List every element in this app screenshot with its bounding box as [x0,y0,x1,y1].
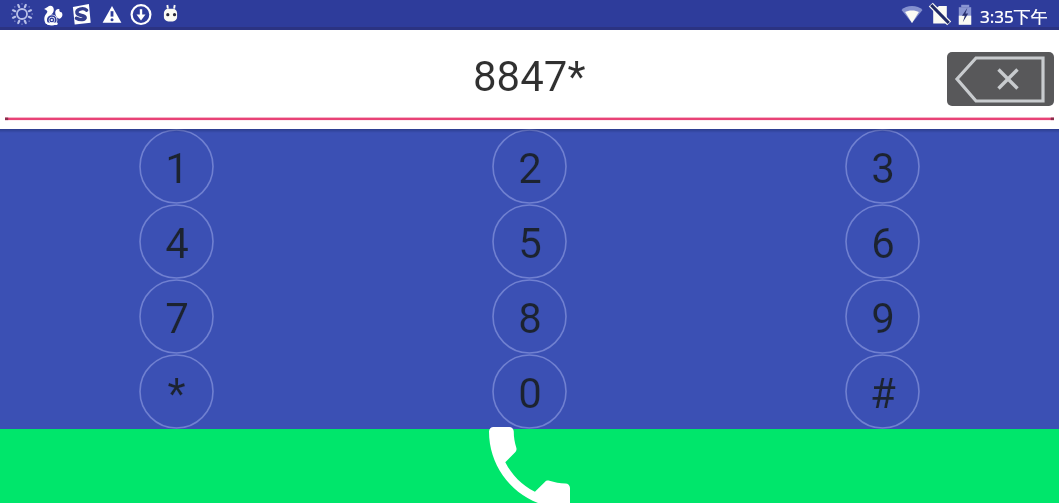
button[interactable]: * [0,354,353,429]
staticText: 4 [165,219,189,268]
button[interactable]: # [706,354,1059,429]
staticText: 3:35下午 [980,5,1048,28]
button[interactable]: 2 [353,129,706,204]
staticText: 6 [871,219,895,268]
staticText: 8847* [473,52,586,101]
staticText: 8 [518,294,542,343]
staticText: 9 [871,294,895,343]
staticText: * [167,369,186,418]
staticText: 7 [165,294,189,343]
staticText: 0 [518,369,542,418]
button[interactable]: 5 [353,204,706,279]
button[interactable]: 0 [353,354,706,429]
button[interactable]: 4 [0,204,353,279]
button[interactable]: Backspace [947,52,1054,106]
staticText: 3 [871,144,895,193]
staticText: 1 [165,144,189,193]
staticText: # [870,369,896,418]
button[interactable]: 8 [353,279,706,354]
staticText: 2 [518,144,542,193]
button[interactable]: 3 [706,129,1059,204]
button[interactable]: 9 [706,279,1059,354]
button[interactable]: 6 [706,204,1059,279]
button[interactable]: 1 [0,129,353,204]
button[interactable]: Call [0,429,1059,503]
staticText: 5 [518,219,542,268]
button[interactable]: 7 [0,279,353,354]
